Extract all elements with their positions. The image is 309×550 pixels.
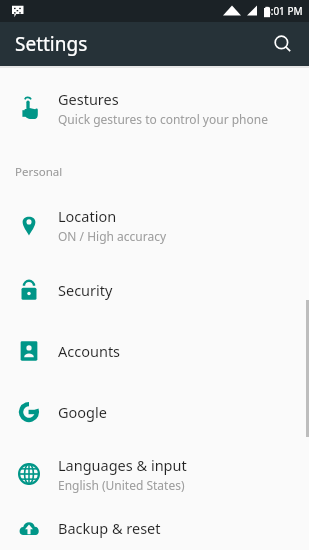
staticText: Backup & reset [58,518,161,538]
staticText: Location [58,206,117,226]
staticText: Personal [15,164,63,180]
button[interactable]: Search [263,24,303,64]
staticText: 3:01 PM [265,4,303,18]
button[interactable]: Languages & input [0,442,309,506]
staticText: English (United States) [58,477,185,493]
staticText: ON / High accuracy [58,228,167,244]
button[interactable]: Gestures [0,68,309,148]
button[interactable]: Backup & reset [0,506,309,550]
staticText: Gestures [58,89,119,109]
staticText: Accounts [58,341,121,361]
button[interactable]: Accounts [0,320,309,382]
staticText: Google [58,402,107,422]
staticText: Quick gestures to control your phone [58,111,268,127]
button[interactable]: Security [0,259,309,320]
staticText: Settings [15,31,88,57]
staticText: Languages & input [58,455,187,475]
button[interactable]: Location [0,190,309,259]
button[interactable]: Google [0,382,309,442]
staticText: Security [58,280,113,300]
